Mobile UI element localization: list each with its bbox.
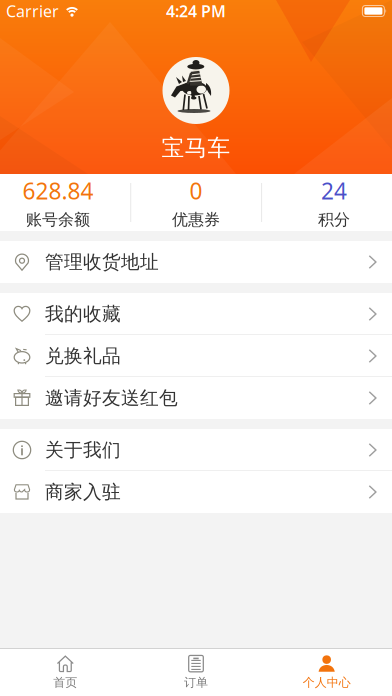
staticText: 订单 xyxy=(184,675,208,690)
staticText: 积分 xyxy=(318,210,350,229)
button[interactable]: 商家入驻 xyxy=(0,471,392,513)
button[interactable]: 管理收货地址 xyxy=(0,241,392,283)
staticText: 优惠券 xyxy=(172,210,220,229)
staticText: 我的收藏 xyxy=(45,302,121,325)
staticText: 关于我们 xyxy=(45,438,121,461)
button[interactable]: 订单 xyxy=(131,649,261,696)
button[interactable]: 628.84 xyxy=(0,174,123,231)
button[interactable]: 关于我们 xyxy=(0,429,392,471)
staticText: 管理收货地址 xyxy=(45,250,159,273)
staticText: Carrier xyxy=(6,0,59,22)
staticText: 账号余额 xyxy=(26,210,90,229)
staticText: 首页 xyxy=(53,675,77,690)
button[interactable]: 邀请好友送红包 xyxy=(0,377,392,419)
button[interactable]: 我的收藏 xyxy=(0,293,392,335)
button[interactable]: 24 xyxy=(269,174,392,231)
button[interactable]: 兑换礼品 xyxy=(0,335,392,377)
staticText: 4:24 PM xyxy=(166,0,226,22)
staticText: 宝马车 xyxy=(161,134,230,162)
staticText: 628.84 xyxy=(22,176,93,206)
button[interactable]: 个人中心 xyxy=(261,649,392,696)
staticText: 个人中心 xyxy=(303,675,351,690)
staticText: 兑换礼品 xyxy=(45,344,121,367)
staticText: 0 xyxy=(189,176,202,206)
button[interactable]: 0 xyxy=(131,174,261,231)
staticText: 邀请好友送红包 xyxy=(45,386,178,409)
button[interactable]: 首页 xyxy=(0,649,131,696)
staticText: 24 xyxy=(321,176,347,206)
button[interactable]: 用户头像 xyxy=(162,57,229,124)
staticText: 商家入驻 xyxy=(45,480,121,503)
